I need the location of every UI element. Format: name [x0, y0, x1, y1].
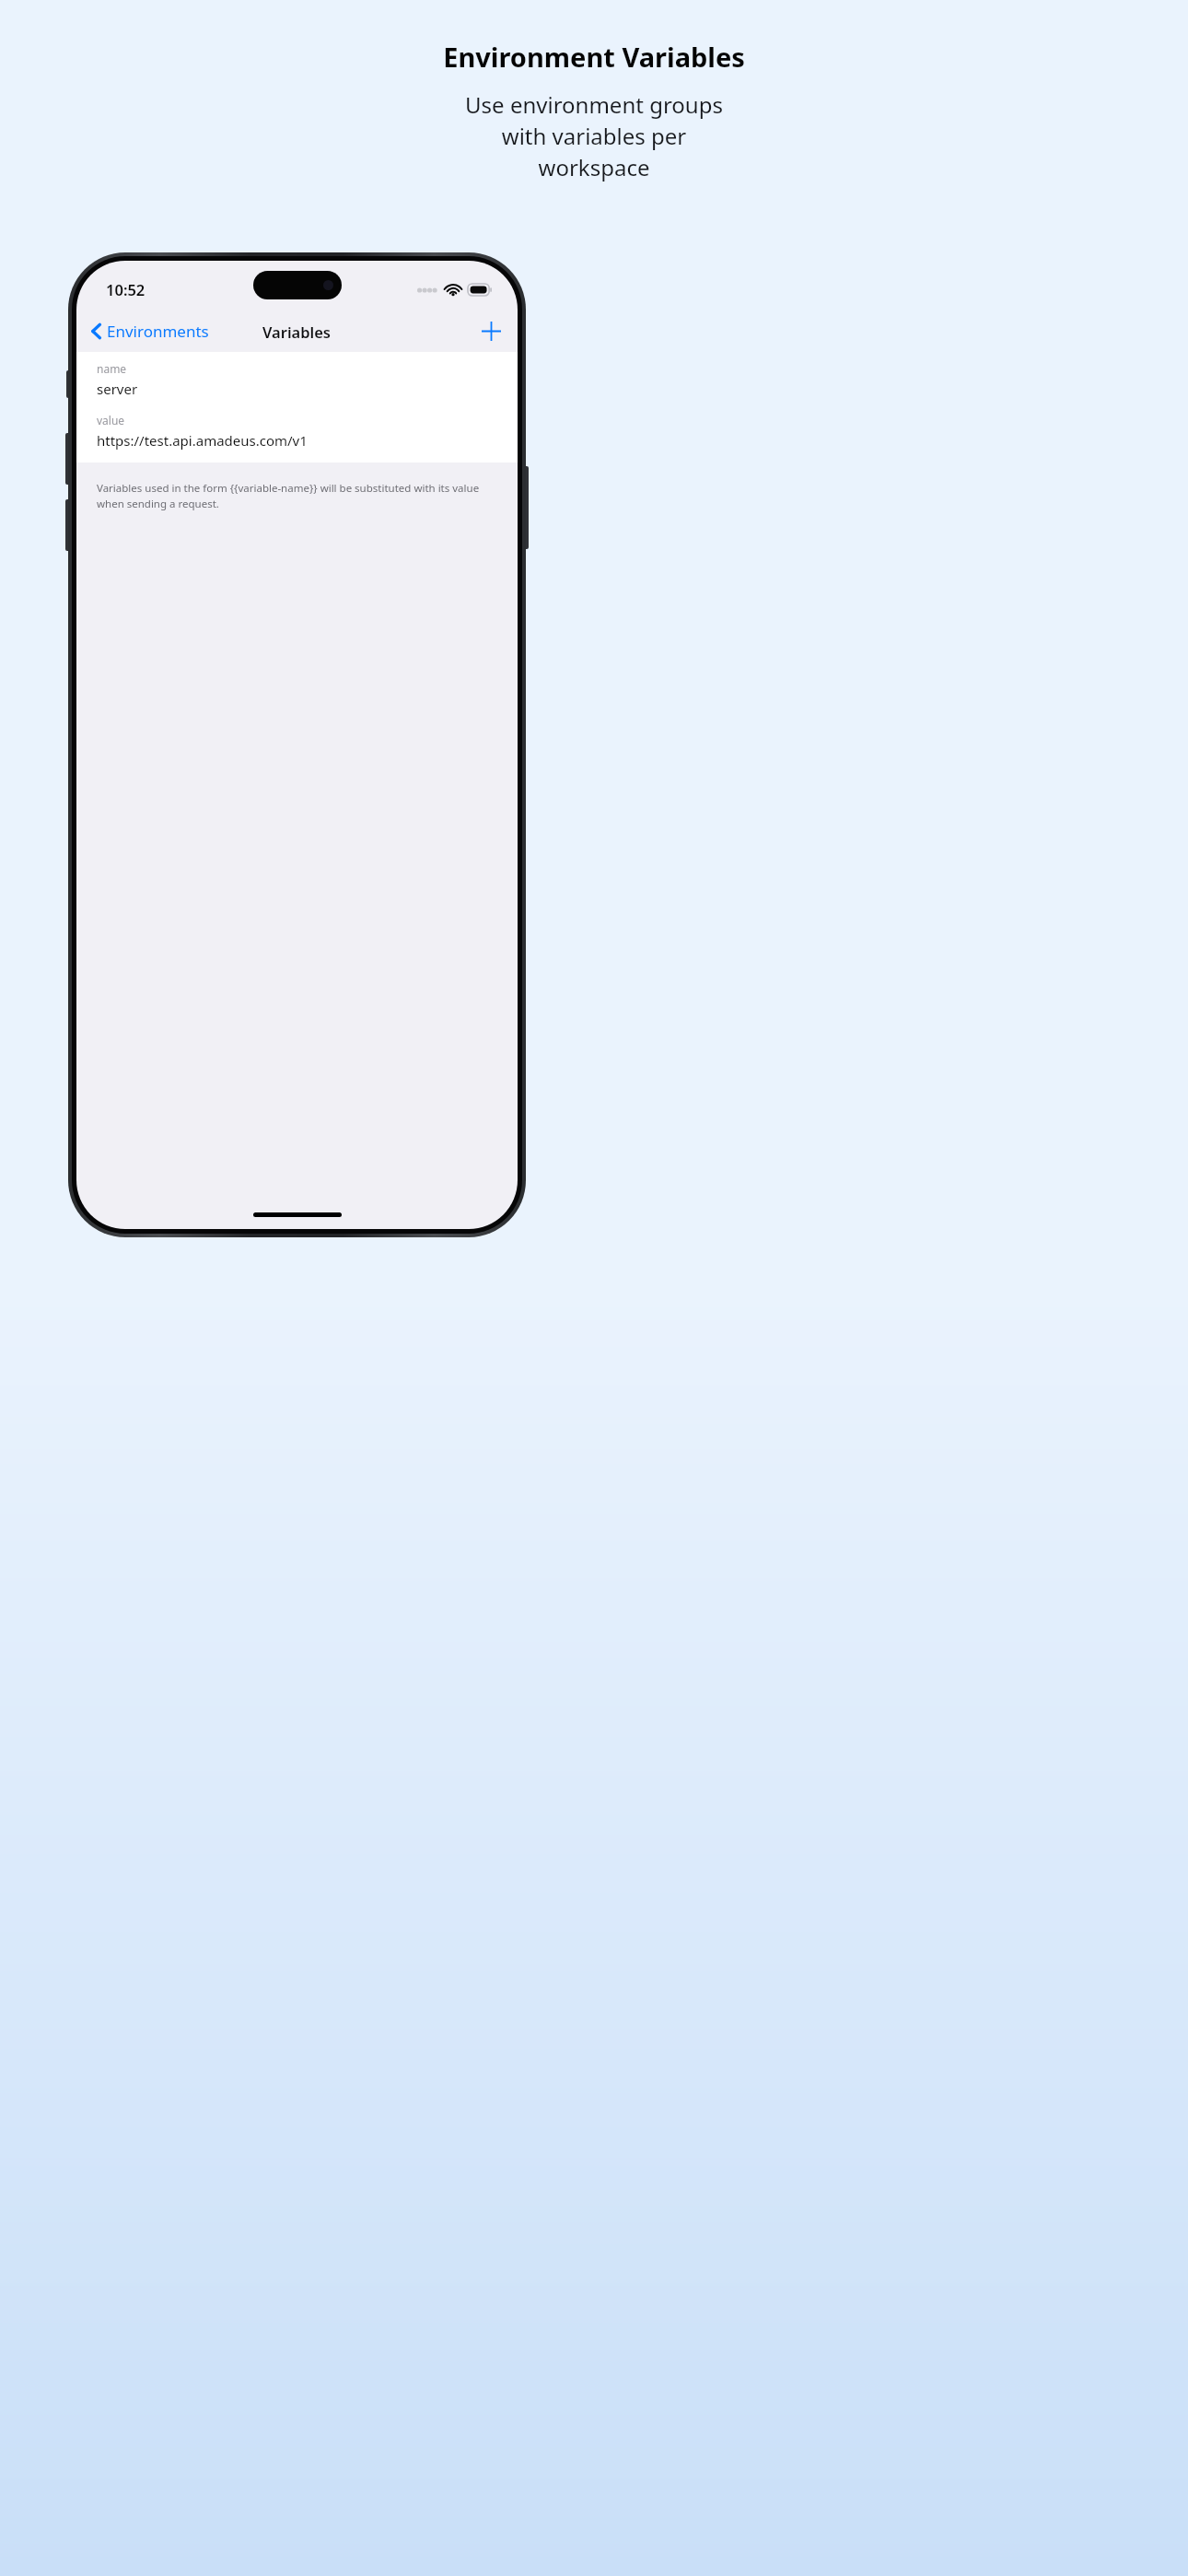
staticText: server	[97, 380, 138, 398]
staticText: name	[97, 361, 127, 376]
button[interactable]: name	[76, 352, 518, 463]
button[interactable]: Add variable	[465, 316, 518, 346]
staticText: Environments	[107, 321, 209, 342]
staticText: Use environment groups with variables pe…	[451, 89, 737, 182]
staticText: Environment Variables	[443, 39, 745, 75]
button[interactable]: Environments	[76, 315, 216, 347]
staticText: Variables used in the form {{variable-na…	[97, 481, 497, 510]
staticText: Variables	[262, 322, 332, 342]
staticText: 10:52	[106, 279, 146, 299]
staticText: value	[97, 413, 125, 427]
staticText: https://test.api.amadeus.com/v1	[97, 431, 308, 450]
